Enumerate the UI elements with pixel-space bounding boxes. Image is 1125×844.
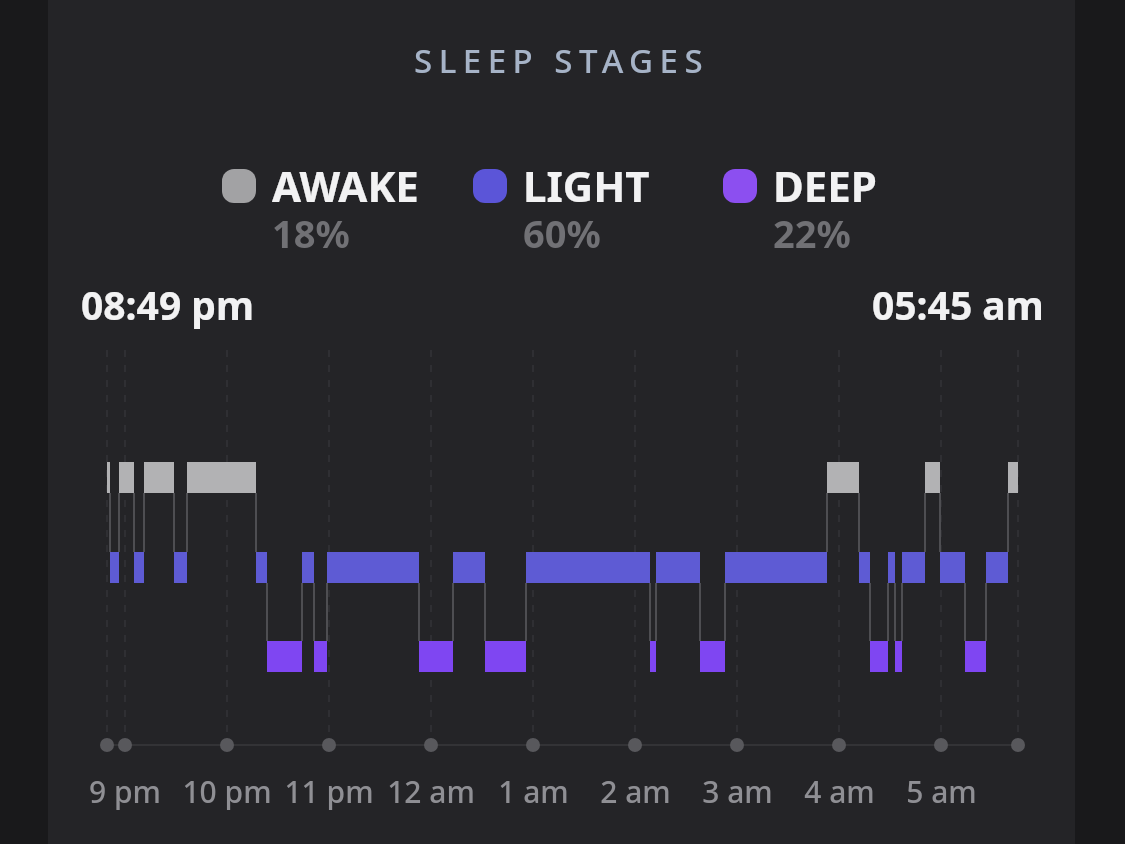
button[interactable]: LIGHT bbox=[473, 167, 733, 257]
staticText: 12 am bbox=[387, 771, 475, 812]
staticText: 60% bbox=[523, 207, 601, 251]
staticText: 08:49 pm bbox=[81, 278, 255, 331]
staticText: 3 am bbox=[702, 771, 773, 812]
staticText: 4 am bbox=[804, 771, 875, 812]
staticText: 1 am bbox=[498, 771, 569, 812]
button[interactable]: DEEP bbox=[723, 167, 983, 257]
staticText: 9 pm bbox=[89, 771, 161, 812]
staticText: 05:45 am bbox=[872, 278, 1044, 331]
staticText: 18% bbox=[272, 207, 350, 251]
staticText: 11 pm bbox=[284, 771, 374, 812]
staticText: 5 am bbox=[906, 771, 977, 812]
staticText: 10 pm bbox=[182, 771, 272, 812]
button[interactable]: AWAKE bbox=[222, 167, 482, 257]
staticText: LIGHT bbox=[523, 157, 650, 203]
staticText: 22% bbox=[773, 207, 851, 251]
staticText: DEEP bbox=[773, 157, 877, 203]
staticText: SLEEP STAGES bbox=[414, 38, 710, 83]
staticText: 2 am bbox=[600, 771, 671, 812]
staticText: AWAKE bbox=[272, 157, 419, 203]
